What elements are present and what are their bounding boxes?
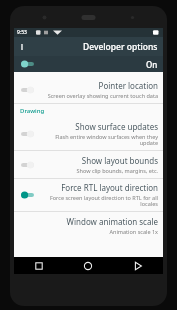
staticText: On xyxy=(146,59,158,70)
staticText: Animation scale 1x xyxy=(109,228,158,235)
staticText: Window animation scale xyxy=(66,216,158,227)
button[interactable]: Back xyxy=(113,257,163,274)
button[interactable]: Recents xyxy=(14,257,63,274)
button[interactable]: Show layout bounds xyxy=(14,151,163,178)
staticText: Drawing xyxy=(20,107,45,115)
staticText: Force screen layout direction to RTL for… xyxy=(40,194,158,208)
staticText: Force RTL layout direction xyxy=(61,182,158,193)
button[interactable]: More options xyxy=(14,37,30,56)
button[interactable]: Show surface updates xyxy=(14,118,163,150)
button[interactable]: Home xyxy=(63,257,113,274)
button[interactable]: Pointer location xyxy=(14,76,163,103)
staticText: Pointer location xyxy=(98,80,158,91)
staticText: Developer options xyxy=(83,41,158,53)
button[interactable]: Window animation scale xyxy=(14,212,163,239)
button[interactable]: Force RTL layout direction xyxy=(14,179,163,211)
staticText: Show clip bounds, margins, etc. xyxy=(76,167,158,174)
staticText: 9:53 xyxy=(17,29,27,36)
button[interactable]: On xyxy=(14,56,163,72)
staticText: Flash entire window surfaces when they u… xyxy=(40,133,158,147)
staticText: Screen overlay showing current touch dat… xyxy=(47,92,158,99)
staticText: Show layout bounds xyxy=(81,155,158,166)
staticText: Show surface updates xyxy=(75,121,158,132)
